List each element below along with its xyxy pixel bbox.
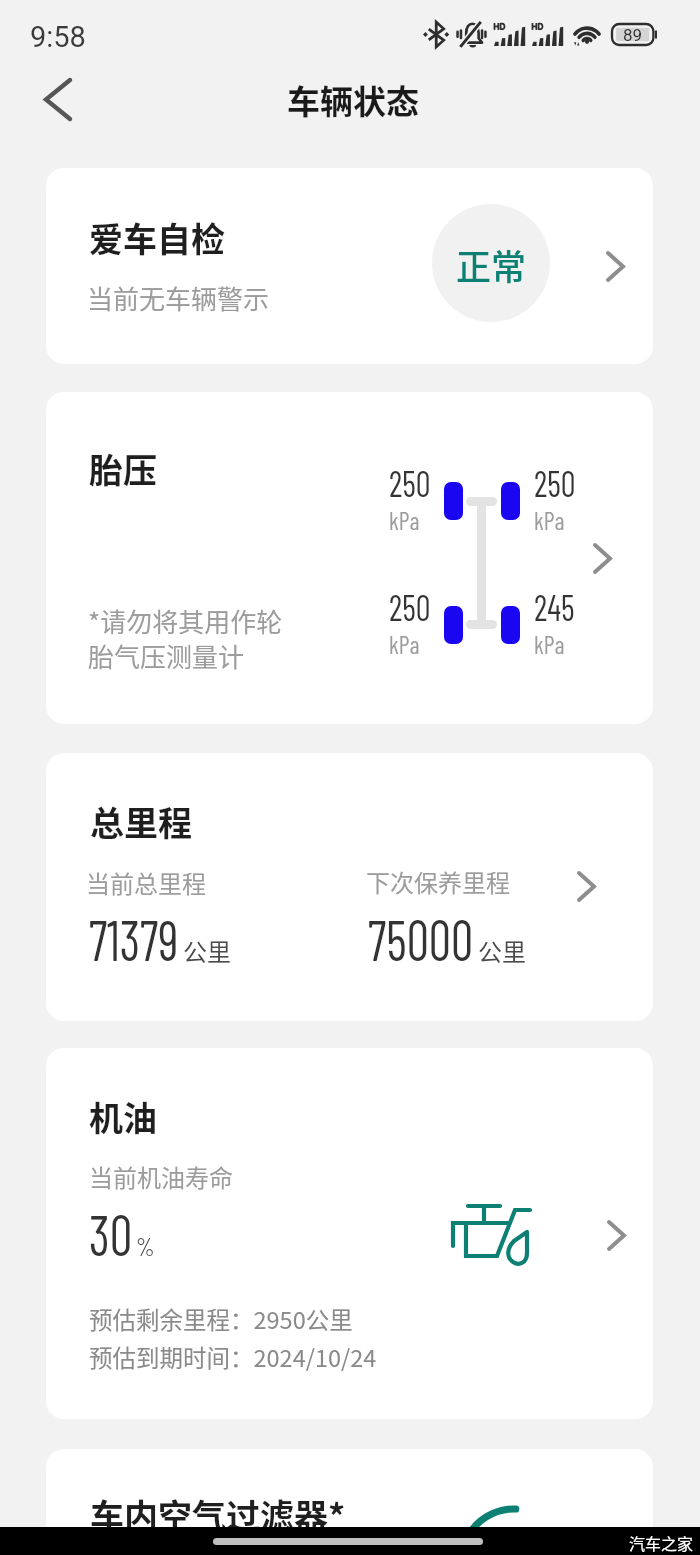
staticText: 9:58	[30, 20, 86, 54]
staticText: 250	[389, 585, 431, 628]
staticText: 当前总里程	[86, 865, 206, 900]
staticText: 当前无车辆警示	[87, 279, 270, 317]
button[interactable]: 车内空气过滤器*	[46, 1449, 653, 1555]
staticText: kPa	[534, 628, 565, 659]
staticText: 250	[534, 461, 576, 504]
staticText: 245	[534, 585, 575, 628]
staticText: 当前机油寿命	[89, 1159, 233, 1194]
button[interactable]: 机油	[46, 1048, 653, 1419]
staticText: 71379	[89, 905, 179, 972]
button[interactable]: 总里程	[46, 753, 653, 1021]
staticText: 胎压	[89, 444, 157, 493]
staticText: 公里	[183, 933, 231, 968]
staticText: 89	[623, 25, 643, 45]
staticText: 30	[89, 1199, 133, 1267]
staticText: 胎气压测量计	[88, 637, 245, 675]
staticText: *请勿将其用作轮	[88, 602, 283, 640]
button[interactable]: Back	[18, 68, 98, 130]
staticText: 正常	[456, 239, 527, 290]
button[interactable]: 爱车自检	[46, 168, 653, 364]
staticText: kPa	[534, 504, 565, 535]
staticText: 总里程	[90, 797, 192, 846]
staticText: 75000	[368, 905, 473, 972]
staticText: 下次保养里程	[366, 864, 510, 899]
staticText: 预估到期时间：2024/10/24	[89, 1340, 377, 1374]
staticText: 机油	[89, 1092, 157, 1141]
button[interactable]: Home	[213, 1538, 483, 1545]
staticText: 爱车自检	[89, 213, 225, 262]
staticText: 车内空气过滤器*	[90, 1490, 346, 1539]
staticText: kPa	[389, 504, 420, 535]
staticText: kPa	[389, 628, 420, 659]
staticText: 250	[389, 461, 431, 504]
staticText: 车辆状态	[287, 76, 419, 124]
staticText: 预估剩余里程：2950公里	[89, 1302, 353, 1336]
staticText: 公里	[478, 933, 526, 968]
button[interactable]: 胎压	[46, 392, 653, 724]
staticText: %	[136, 1231, 155, 1261]
staticText: 汽车之家	[629, 1531, 694, 1554]
